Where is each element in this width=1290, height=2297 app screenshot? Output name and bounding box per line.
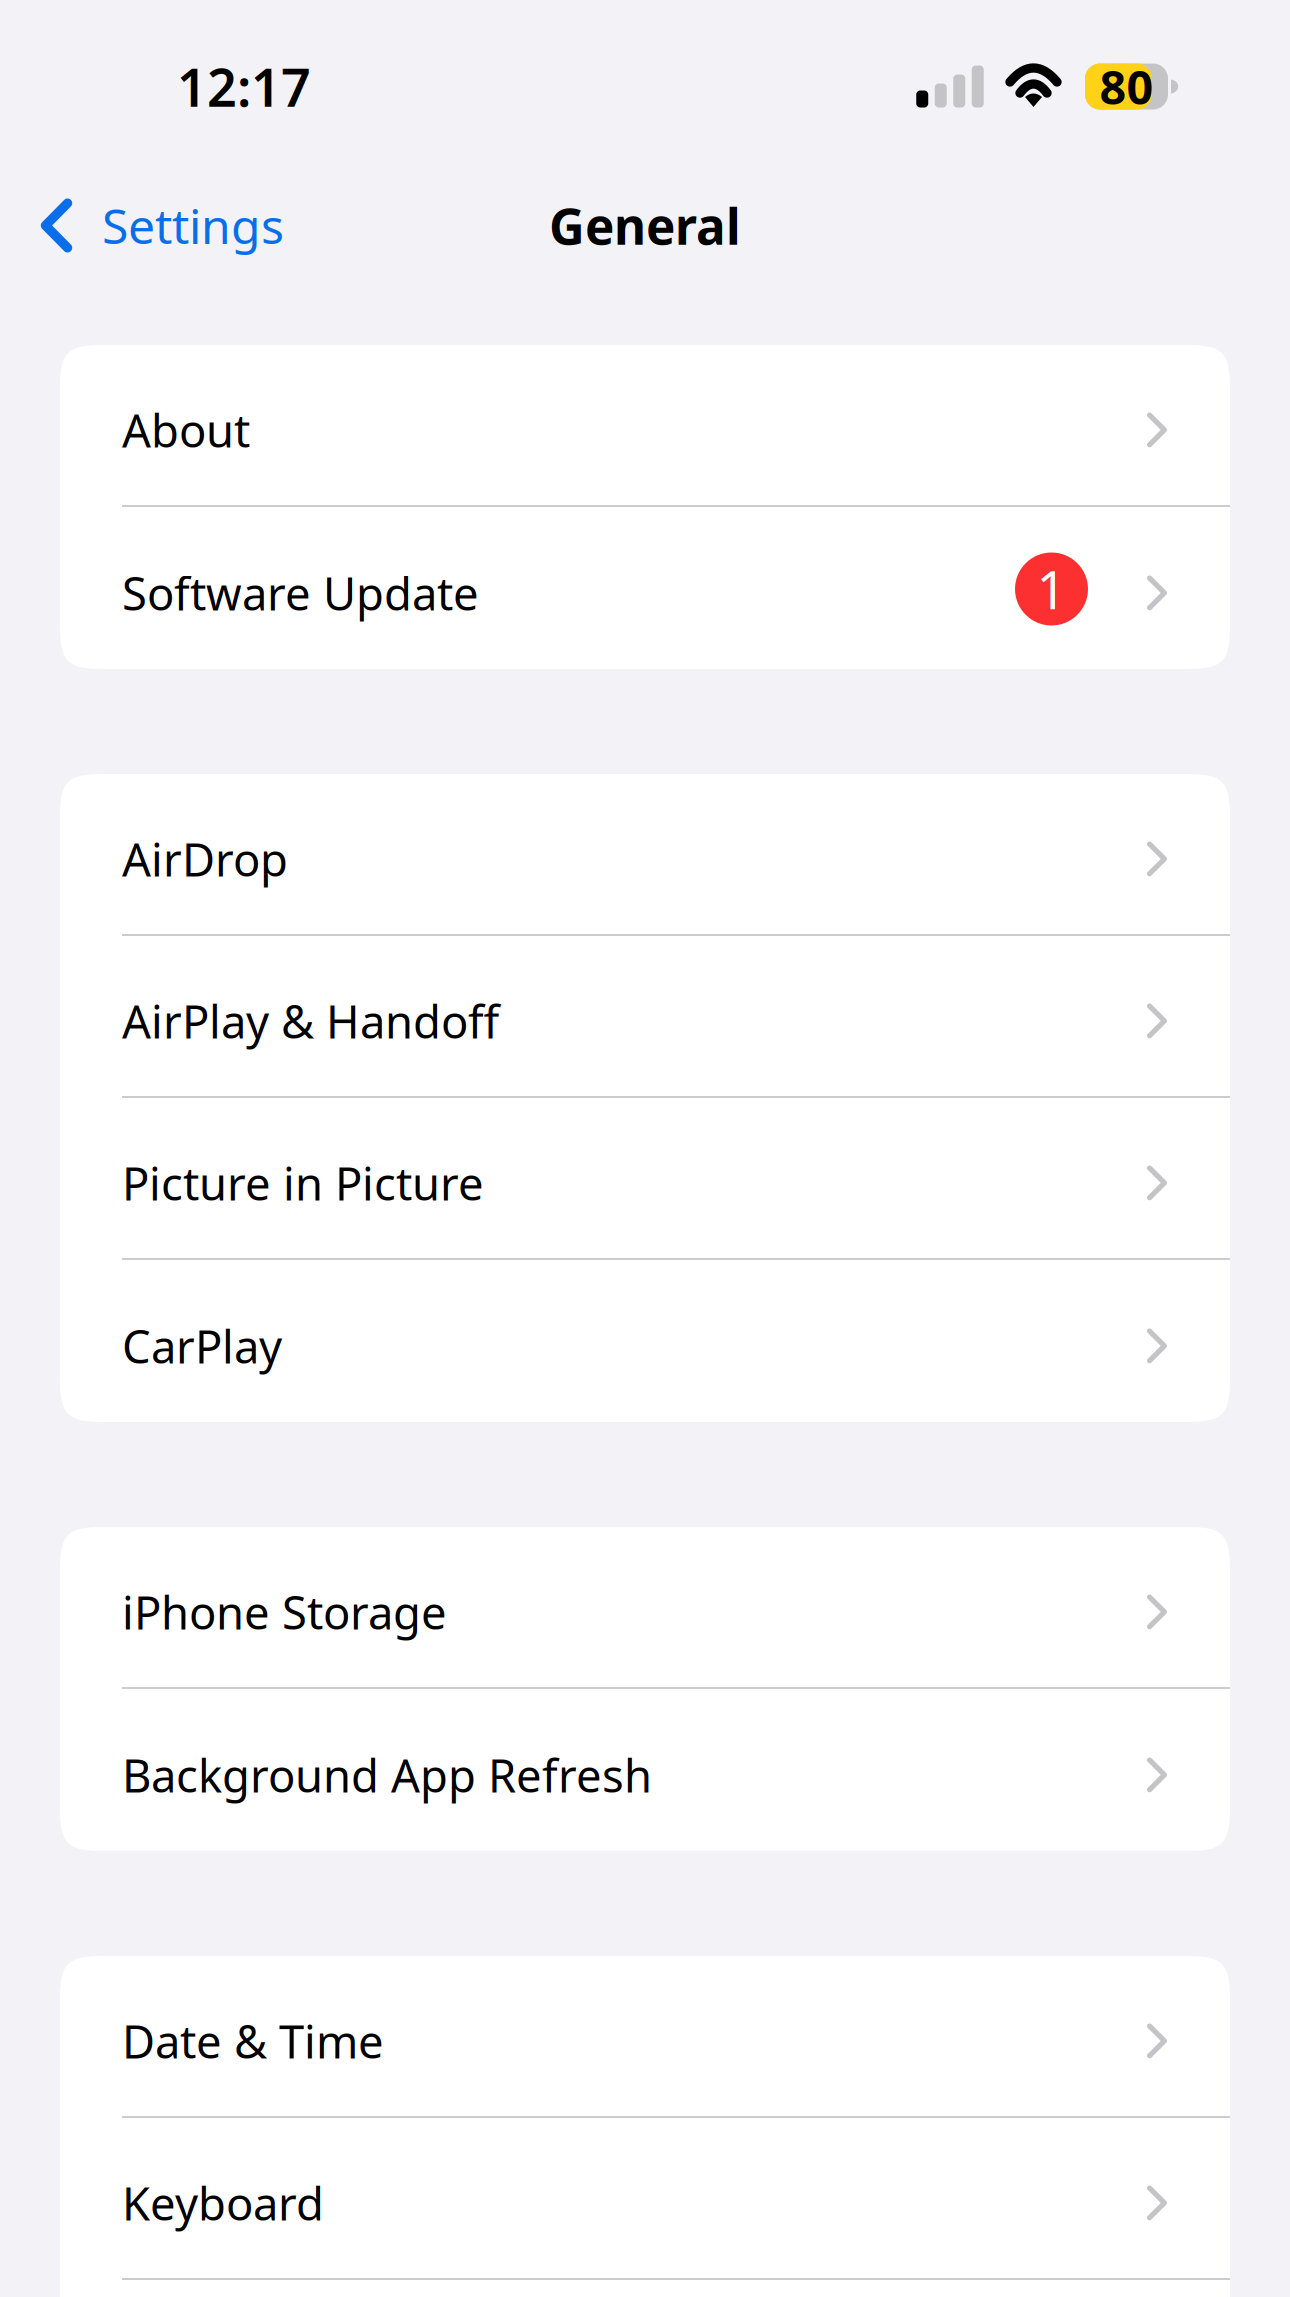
staticText: Picture in Picture <box>122 1153 484 1213</box>
button[interactable]: Picture in Picture <box>60 1098 1230 1260</box>
staticText: Background App Refresh <box>122 1745 652 1805</box>
button[interactable]: Software Update <box>60 507 1230 669</box>
staticText: 12:17 <box>177 52 311 121</box>
button[interactable]: CarPlay <box>60 1260 1230 1422</box>
button[interactable]: Settings <box>0 180 308 270</box>
button[interactable]: iPhone Storage <box>60 1527 1230 1689</box>
staticText: Settings <box>102 194 284 257</box>
staticText: AirDrop <box>122 829 288 889</box>
button[interactable]: Keyboard <box>60 2118 1230 2280</box>
staticText: Software Update <box>122 563 479 623</box>
staticText: 1 <box>1036 554 1066 624</box>
button[interactable]: About <box>60 345 1230 507</box>
button[interactable]: Date & Time <box>60 1956 1230 2118</box>
staticText: General <box>549 193 741 258</box>
button[interactable]: AirPlay & Handoff <box>60 936 1230 1098</box>
button[interactable]: Background App Refresh <box>60 1689 1230 1851</box>
staticText: About <box>122 400 250 460</box>
button[interactable]: AirDrop <box>60 774 1230 936</box>
staticText: Date & Time <box>122 2011 384 2071</box>
staticText: iPhone Storage <box>122 1582 447 1642</box>
staticText: CarPlay <box>122 1316 282 1376</box>
staticText: 80 <box>1099 55 1153 117</box>
staticText: AirPlay & Handoff <box>122 991 499 1051</box>
staticText: Keyboard <box>122 2173 324 2233</box>
